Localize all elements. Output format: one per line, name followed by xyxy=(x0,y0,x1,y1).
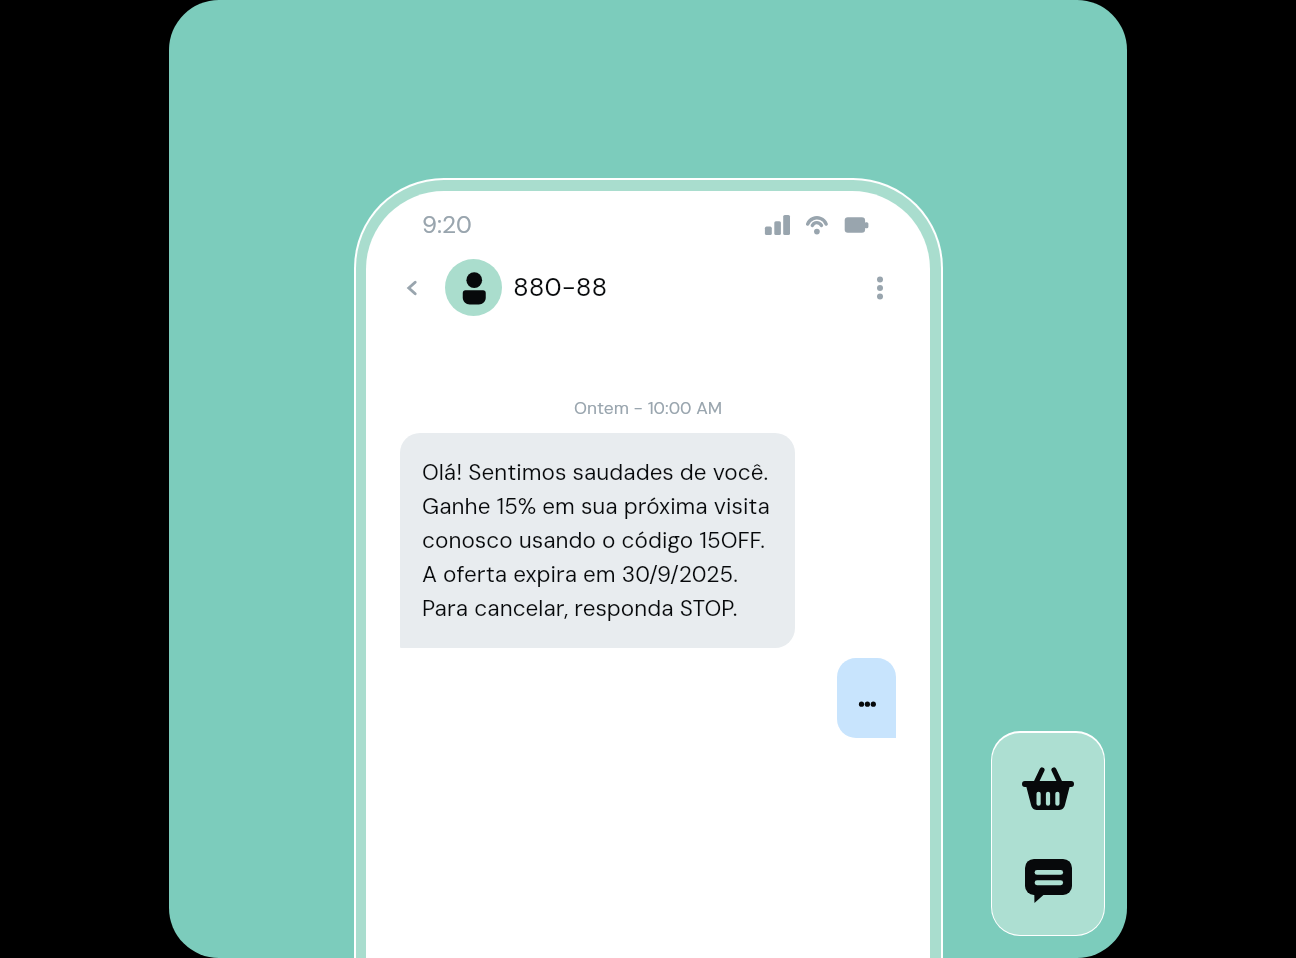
button[interactable]: Olá! Sentimos saudades de você. Ganhe 15… xyxy=(400,433,795,648)
button[interactable]: Contact avatar xyxy=(445,259,502,316)
button[interactable]: Messages xyxy=(992,834,1104,935)
button[interactable]: Back xyxy=(390,266,433,309)
staticText: 9:20 xyxy=(422,209,472,240)
button[interactable]: Shopping basket xyxy=(992,733,1104,834)
button[interactable]: Typing xyxy=(837,658,896,738)
staticText: Olá! Sentimos saudades de você. Ganhe 15… xyxy=(422,458,770,623)
button[interactable]: More options xyxy=(858,266,901,309)
staticText: 880-88 xyxy=(513,270,608,304)
staticText: Ontem - 10:00 AM xyxy=(366,397,930,420)
button[interactable]: 880-88 xyxy=(513,261,623,313)
